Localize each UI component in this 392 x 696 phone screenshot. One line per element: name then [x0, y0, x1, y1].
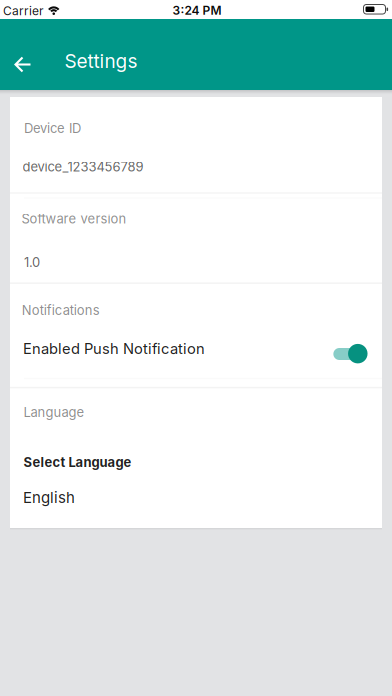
- button[interactable]: Select Language: [10, 440, 382, 528]
- staticText: Carrier: [3, 4, 44, 18]
- staticText: 3:24 PM: [172, 3, 221, 17]
- staticText: Notifications: [22, 302, 100, 318]
- button[interactable]: Back: [6, 44, 46, 84]
- staticText: device_1233456789: [22, 159, 143, 175]
- staticText: Settings: [64, 50, 137, 73]
- button[interactable]: Enabled Push Notification: [10, 330, 382, 378]
- staticText: Software version: [22, 211, 127, 227]
- staticText: Language: [24, 404, 85, 420]
- staticText: 1.0: [24, 254, 40, 270]
- staticText: Enabled Push Notification: [23, 340, 205, 357]
- staticText: Device ID: [24, 120, 81, 136]
- staticText: English: [23, 488, 75, 507]
- staticText: Select Language: [24, 454, 132, 470]
